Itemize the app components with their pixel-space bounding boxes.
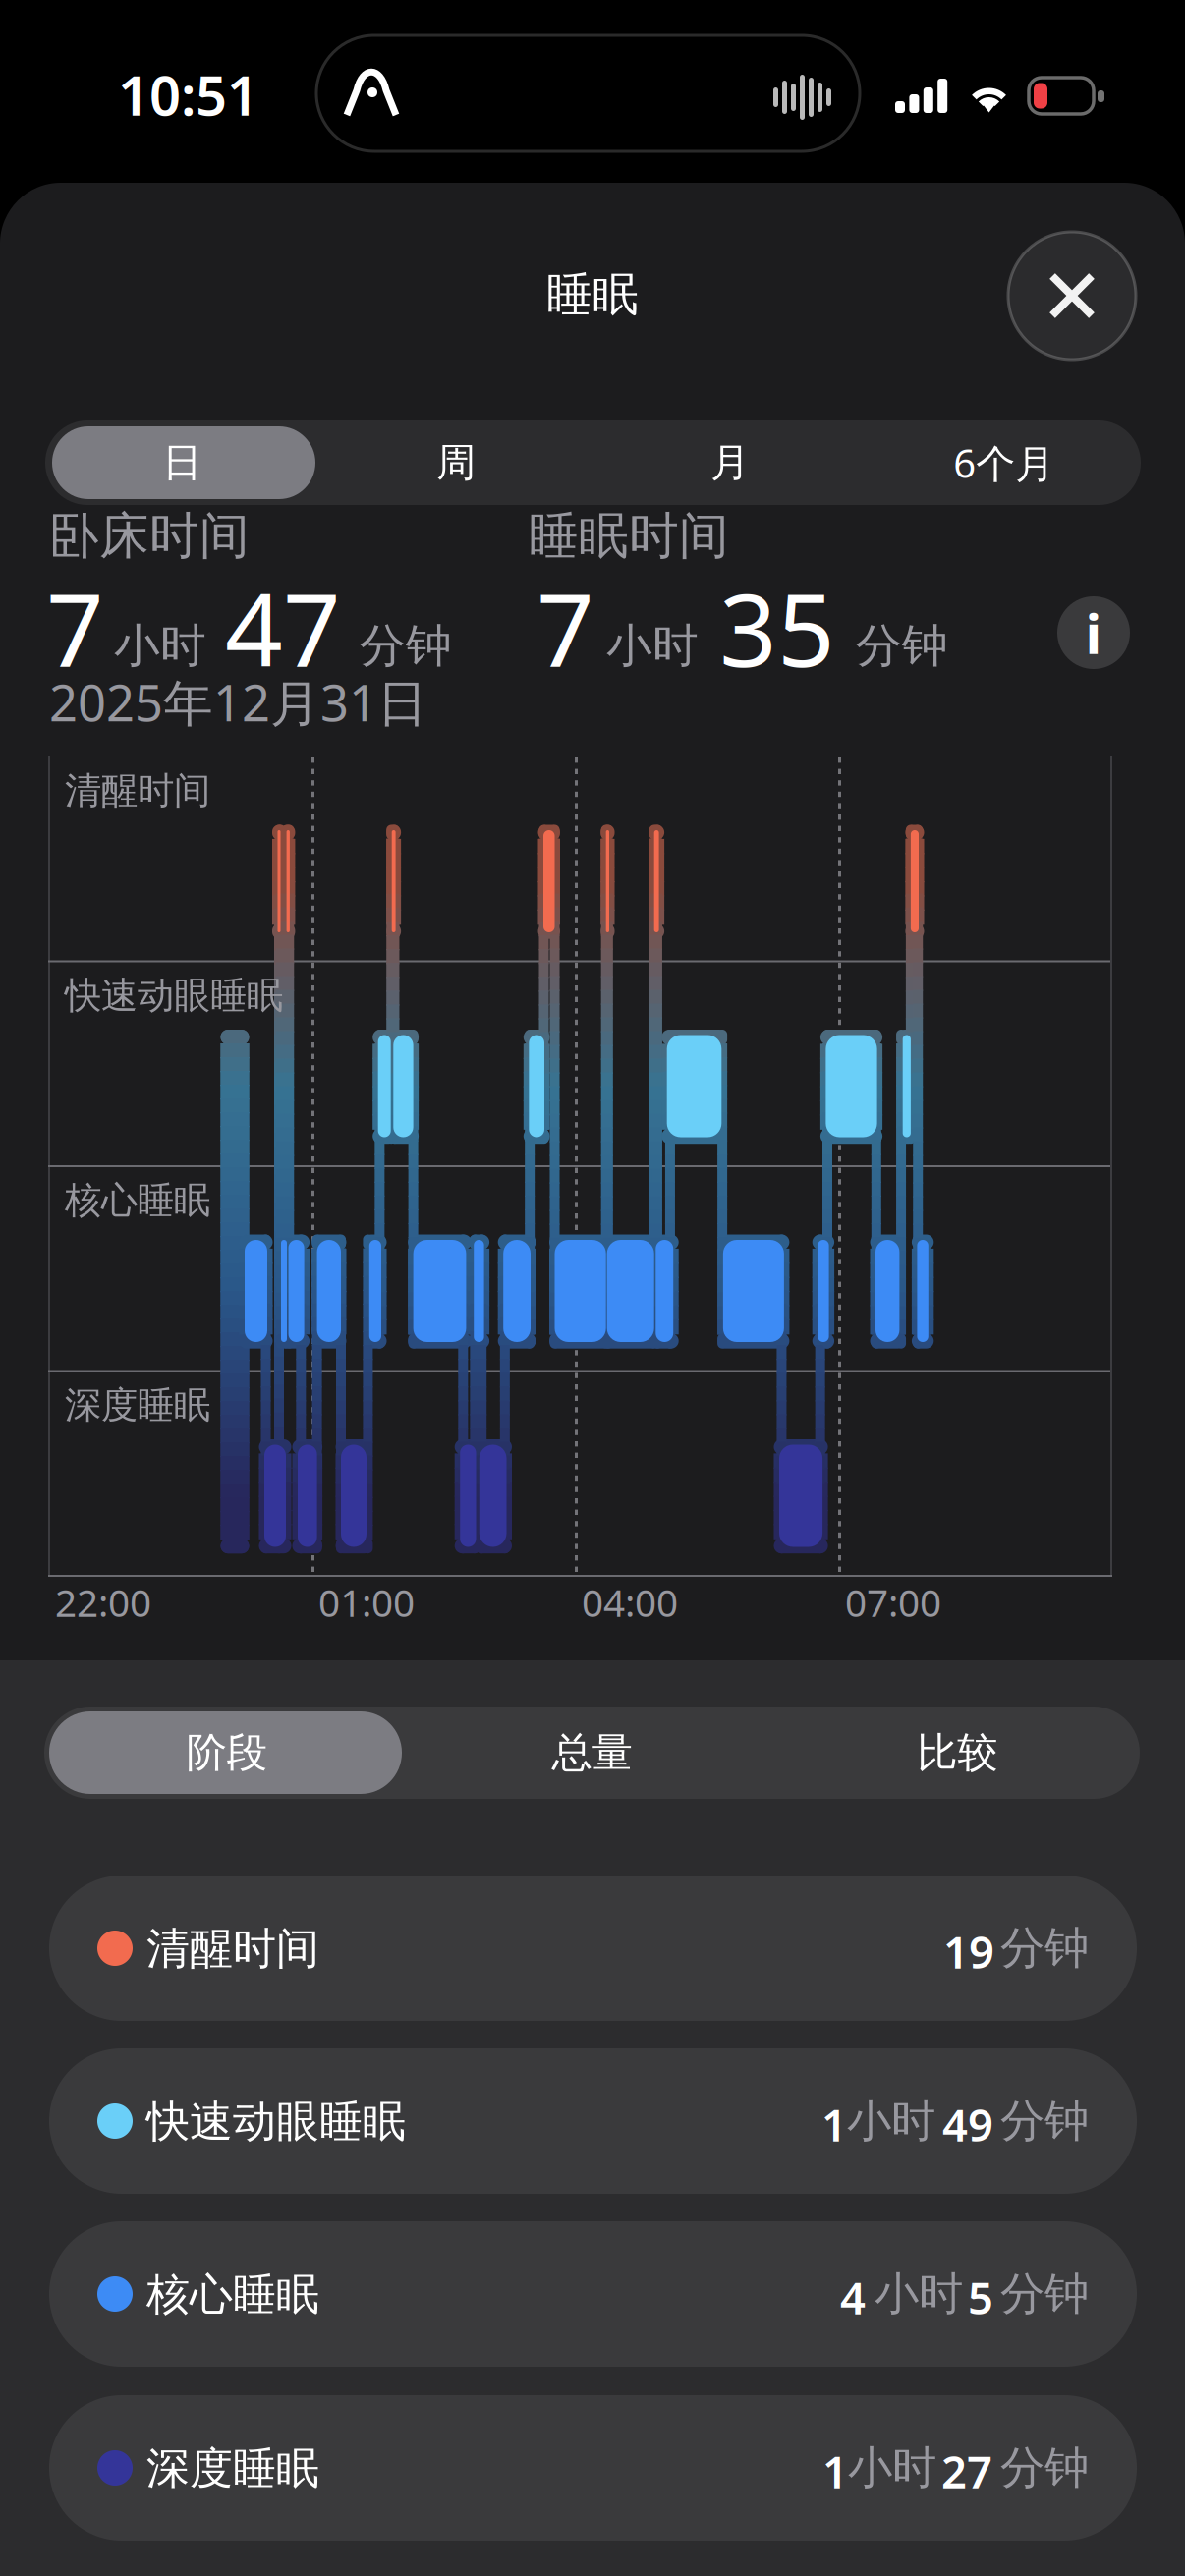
staticText: 深度睡眠 xyxy=(65,1383,210,1428)
staticText: 总量 xyxy=(552,1728,632,1778)
staticText: 分钟 xyxy=(1000,1921,1089,1976)
staticText: 22:00 xyxy=(55,1577,151,1627)
staticText: 1 xyxy=(822,2442,848,2501)
button[interactable]: 总量 xyxy=(0,0,1185,2576)
staticText: 6个月 xyxy=(953,437,1054,489)
staticText: 阶段 xyxy=(186,1728,267,1778)
staticText: 小时 xyxy=(848,2441,936,2495)
staticText: 2025年12月31日 xyxy=(49,669,427,735)
staticText: 日 xyxy=(163,439,202,487)
staticText: 核心睡眠 xyxy=(146,2268,319,2321)
button[interactable]: 核心睡眠 xyxy=(0,0,1185,2576)
staticText: 7 xyxy=(46,561,104,694)
button[interactable]: 日 xyxy=(0,0,1185,2576)
staticText: 快速动眼睡眠 xyxy=(65,973,283,1018)
button[interactable]: 周 xyxy=(0,0,1185,2576)
staticText: 清醒时间 xyxy=(146,1922,319,1975)
button[interactable]: 比较 xyxy=(0,0,1185,2576)
staticText: 快速动眼睡眠 xyxy=(146,2095,406,2148)
staticText: 分钟 xyxy=(856,618,948,674)
staticText: 5 xyxy=(968,2268,993,2327)
staticText: 小时 xyxy=(875,2267,963,2321)
button[interactable]: 月 xyxy=(0,0,1185,2576)
staticText: 10:51 xyxy=(118,58,258,131)
staticText: 27 xyxy=(941,2442,992,2501)
staticText: 睡眠 xyxy=(546,267,639,323)
staticText: 7 xyxy=(536,561,594,694)
staticText: 核心睡眠 xyxy=(65,1178,210,1223)
staticText: i xyxy=(1085,596,1102,669)
staticText: 01:00 xyxy=(318,1577,415,1627)
staticText: 小时 xyxy=(847,2094,935,2148)
staticText: 月 xyxy=(710,439,750,487)
staticText: 比较 xyxy=(917,1728,998,1778)
staticText: 07:00 xyxy=(845,1577,941,1627)
button[interactable]: 清醒时间 xyxy=(0,0,1185,2576)
staticText: 周 xyxy=(436,439,476,487)
staticText: 04:00 xyxy=(582,1577,678,1627)
button[interactable]: 6个月 xyxy=(0,0,1185,2576)
staticText: 卧床时间 xyxy=(49,505,250,566)
staticText: 49 xyxy=(942,2095,993,2154)
button[interactable]: 快速动眼睡眠 xyxy=(0,0,1185,2576)
staticText: 分钟 xyxy=(360,618,452,674)
staticText: 睡眠时间 xyxy=(529,505,729,566)
staticText: 清醒时间 xyxy=(65,768,210,813)
staticText: 47 xyxy=(225,561,341,694)
staticText: 分钟 xyxy=(1000,2094,1089,2148)
staticText: 深度睡眠 xyxy=(146,2442,319,2495)
staticText: 小时 xyxy=(114,618,206,674)
button[interactable]: 关闭 xyxy=(0,0,1185,2576)
button[interactable]: 深度睡眠 xyxy=(0,0,1185,2576)
staticText: 35 xyxy=(719,561,835,694)
staticText: 分钟 xyxy=(1000,2441,1089,2495)
button[interactable]: 阶段 xyxy=(0,0,1185,2576)
staticText: 小时 xyxy=(606,618,699,674)
button[interactable]: 信息 xyxy=(0,0,1185,2576)
staticText: 4 xyxy=(840,2268,866,2327)
staticText: 19 xyxy=(943,1922,994,1981)
staticText: 1 xyxy=(821,2095,847,2154)
staticText: 分钟 xyxy=(1000,2267,1089,2321)
